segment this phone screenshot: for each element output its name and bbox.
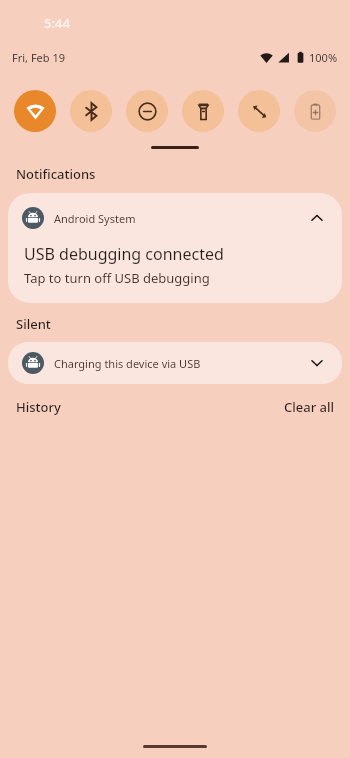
staticText: Silent [16,315,51,333]
button[interactable]: Expand [304,350,330,376]
button[interactable]: Auto rotate [238,90,280,132]
staticText: 5:44 [44,14,70,32]
staticText: Notifications [16,165,96,183]
button[interactable]: Bluetooth [70,90,112,132]
button[interactable]: Android System [8,193,342,303]
button[interactable]: Internet [14,90,56,132]
staticText: Charging this device via USB [54,356,201,371]
staticText: Tap to turn off USB debugging [24,269,210,287]
staticText: Clear all [284,398,334,416]
button[interactable]: Charging this device via USB [8,342,342,384]
staticText: 100% [309,50,338,65]
button[interactable]: History [16,398,61,416]
staticText: History [16,398,61,416]
button[interactable]: Clear all [284,398,334,416]
button[interactable]: Do not disturb [126,90,168,132]
button[interactable]: Flashlight [182,90,224,132]
staticText: USB debugging connected [24,243,224,265]
button[interactable]: Battery saver [294,90,336,132]
staticText: Fri, Feb 19 [12,50,66,65]
staticText: Android System [54,211,136,226]
button[interactable]: Collapse [304,205,330,231]
